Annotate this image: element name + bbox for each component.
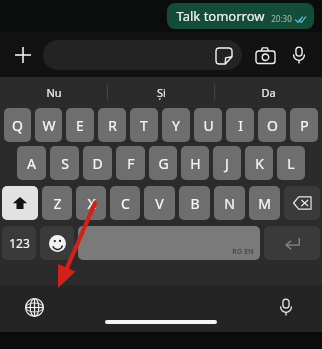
staticText: C xyxy=(121,194,130,213)
button[interactable]: Camera xyxy=(252,42,278,68)
button[interactable]: I xyxy=(226,108,254,142)
staticText: R xyxy=(108,116,117,135)
button[interactable]: G xyxy=(149,146,177,180)
staticText: Q xyxy=(12,116,23,135)
button[interactable]: Attach xyxy=(10,42,36,68)
button[interactable]: Q xyxy=(4,108,31,142)
button[interactable]: E xyxy=(66,108,94,142)
staticText: RO EN xyxy=(232,247,254,257)
button[interactable]: Stickers xyxy=(43,40,242,70)
staticText: T xyxy=(140,116,148,135)
button[interactable]: Nu xyxy=(0,77,108,107)
staticText: B xyxy=(190,194,200,213)
button[interactable]: Voice message xyxy=(286,42,312,68)
button[interactable]: Voice input xyxy=(272,293,300,321)
staticText: 123 xyxy=(9,235,30,251)
button[interactable]: L xyxy=(277,146,305,180)
button[interactable]: Y xyxy=(162,108,190,142)
staticText: P xyxy=(300,116,309,135)
button[interactable]: J xyxy=(213,146,241,180)
button[interactable]: M xyxy=(249,186,280,220)
staticText: Și xyxy=(157,85,166,100)
staticText: Nu xyxy=(46,85,62,100)
staticText: H xyxy=(190,154,201,173)
button[interactable]: Da xyxy=(215,77,322,107)
button[interactable]: N xyxy=(214,186,245,220)
button[interactable]: K xyxy=(245,146,273,180)
staticText: N xyxy=(224,194,235,213)
staticText: Z xyxy=(53,194,62,213)
button[interactable]: U xyxy=(194,108,222,142)
button[interactable]: 123 xyxy=(2,226,36,260)
button[interactable]: Space xyxy=(78,226,260,260)
staticText: J xyxy=(225,154,229,173)
button[interactable]: Talk tomorrow xyxy=(167,3,314,29)
button[interactable]: Z xyxy=(42,186,72,220)
staticText: Y xyxy=(172,116,180,135)
button[interactable]: Emoji xyxy=(40,226,74,260)
button[interactable]: D xyxy=(83,146,112,180)
button[interactable]: Și xyxy=(108,77,215,107)
button[interactable]: Enter xyxy=(264,226,320,260)
staticText: L xyxy=(287,154,295,173)
staticText: M xyxy=(258,194,271,213)
button[interactable]: Change language xyxy=(20,293,48,321)
staticText: 20:30 xyxy=(271,13,292,24)
staticText: W xyxy=(42,116,56,135)
staticText: V xyxy=(155,194,164,213)
button[interactable]: P xyxy=(290,108,318,142)
button[interactable]: W xyxy=(35,108,62,142)
button[interactable]: R xyxy=(98,108,126,142)
other: Stickers xyxy=(214,46,233,65)
staticText: U xyxy=(203,116,214,135)
staticText: S xyxy=(61,154,69,173)
button[interactable]: Shift xyxy=(2,186,38,220)
button[interactable]: A xyxy=(17,146,46,180)
staticText: K xyxy=(255,154,264,173)
staticText: G xyxy=(158,154,169,173)
button[interactable]: B xyxy=(179,186,210,220)
staticText: O xyxy=(267,116,278,135)
button[interactable]: F xyxy=(116,146,145,180)
staticText: A xyxy=(27,154,36,173)
staticText: E xyxy=(76,116,84,135)
staticText: Da xyxy=(261,85,276,100)
staticText: I xyxy=(238,116,243,135)
staticText: X xyxy=(87,194,96,213)
button[interactable]: X xyxy=(76,186,106,220)
staticText: Talk tomorrow xyxy=(176,7,265,25)
button[interactable]: C xyxy=(110,186,140,220)
button[interactable]: T xyxy=(130,108,158,142)
staticText: D xyxy=(92,154,103,173)
button[interactable]: V xyxy=(144,186,175,220)
button[interactable]: O xyxy=(258,108,286,142)
button[interactable]: Backspace xyxy=(284,186,320,220)
button[interactable]: S xyxy=(50,146,79,180)
staticText: F xyxy=(127,154,135,173)
button[interactable]: H xyxy=(181,146,209,180)
